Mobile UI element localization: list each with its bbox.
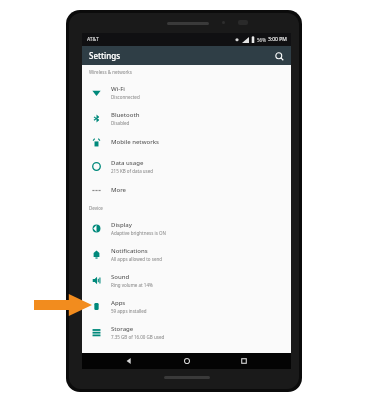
button[interactable]: Notifications (82, 241, 291, 267)
button[interactable]: Apps (82, 293, 291, 319)
button[interactable]: Display (82, 215, 291, 241)
staticText: AT&T (87, 36, 99, 43)
staticText: Sound (111, 273, 130, 281)
staticText: Device (89, 205, 103, 211)
staticText: Settings (89, 50, 121, 61)
button[interactable]: More (82, 179, 291, 201)
staticText: Wireless & networks (89, 69, 132, 75)
button[interactable]: Mobile networks (82, 131, 291, 153)
button[interactable]: Search (271, 48, 287, 64)
button[interactable]: Recent apps (233, 353, 255, 369)
staticText: Notifications (111, 247, 148, 255)
staticText: 56% (257, 37, 266, 43)
button[interactable]: Data usage (82, 153, 291, 179)
staticText: 7.35 GB of 16.00 GB used (111, 334, 165, 340)
button[interactable]: Storage (82, 319, 291, 345)
staticText: All apps allowed to send (111, 256, 163, 262)
staticText: Adaptive brightness is ON (111, 230, 166, 236)
staticText: Ring volume at 14% (111, 282, 153, 288)
staticText: 3:00 PM (268, 36, 287, 43)
staticText: Disabled (111, 120, 130, 126)
staticText: Wi-Fi (111, 85, 125, 93)
button[interactable]: Wi-Fi (82, 79, 291, 105)
staticText: Disconnected (111, 94, 140, 100)
button[interactable]: Sound (82, 267, 291, 293)
staticText: Data usage (111, 159, 144, 167)
staticText: Display (111, 221, 132, 229)
button[interactable]: Bluetooth (82, 105, 291, 131)
staticText: Bluetooth (111, 111, 140, 119)
staticText: Mobile networks (111, 138, 159, 146)
staticText: Storage (111, 325, 134, 333)
other: Pointer to Apps (34, 294, 92, 316)
button[interactable]: Home (176, 353, 198, 369)
staticText: Apps (111, 299, 126, 307)
staticText: More (111, 186, 127, 194)
staticText: 59 apps installed (111, 308, 147, 314)
staticText: 215 KB of data used (111, 168, 154, 174)
button[interactable]: Back (118, 353, 140, 369)
